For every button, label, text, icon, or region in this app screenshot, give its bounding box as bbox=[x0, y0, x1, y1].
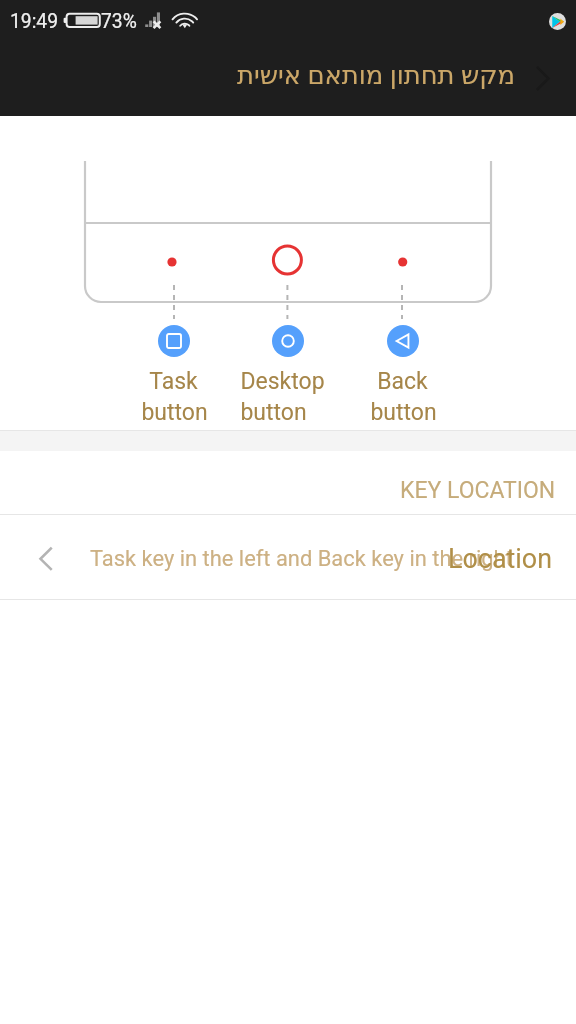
other: Previous bbox=[39, 547, 53, 570]
staticText: מקש תחתון מותאם אישית bbox=[237, 60, 515, 90]
button[interactable]: Task button bbox=[158, 325, 190, 357]
button[interactable]: Desktop button bbox=[272, 325, 304, 357]
staticText: 73% bbox=[101, 10, 137, 33]
staticText: button bbox=[240, 399, 307, 426]
staticText: Task key in the left and Back key in the… bbox=[90, 546, 513, 572]
button[interactable]: מקש תחתון מותאם אישית bbox=[0, 0, 576, 116]
button[interactable]: Back button bbox=[387, 325, 419, 357]
staticText: 19:49 bbox=[10, 10, 59, 33]
staticText: Task bbox=[149, 368, 198, 395]
staticText: Back bbox=[377, 368, 428, 395]
staticText: KEY LOCATION bbox=[400, 477, 556, 504]
button[interactable]: Previous bbox=[0, 515, 576, 599]
other: Play Store bbox=[549, 13, 566, 30]
staticText: Location bbox=[448, 543, 553, 575]
staticText: Desktop bbox=[240, 368, 325, 395]
staticText: button bbox=[141, 399, 208, 426]
staticText: button bbox=[370, 399, 437, 426]
